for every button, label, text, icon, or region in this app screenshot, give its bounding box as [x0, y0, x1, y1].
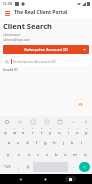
staticText: v	[46, 152, 49, 158]
button[interactable]: 0	[82, 127, 91, 136]
button[interactable]: Search	[16, 118, 23, 125]
staticText: 7	[59, 127, 61, 130]
button[interactable]: Home	[41, 175, 50, 184]
staticText: m	[73, 152, 77, 158]
staticText: f	[36, 140, 38, 146]
button[interactable]: k	[68, 138, 77, 148]
button[interactable]: ?123	[2, 162, 13, 172]
staticText: q	[4, 130, 7, 136]
staticText: s	[17, 140, 20, 146]
button[interactable]: 4	[28, 127, 37, 136]
staticText: 3	[23, 127, 25, 130]
button[interactable]: Recent apps	[65, 174, 76, 184]
staticText: c	[37, 152, 40, 158]
staticText: j	[63, 140, 65, 146]
button[interactable]: x	[24, 150, 34, 160]
button[interactable]: 9	[73, 127, 82, 136]
staticText: 8	[68, 127, 70, 130]
button[interactable]: Back	[16, 175, 25, 184]
staticText: r	[32, 130, 34, 136]
button[interactable]: GIF	[43, 118, 50, 125]
button[interactable]: More options	[69, 118, 76, 125]
staticText: s2manoaur	[3, 33, 21, 37]
button[interactable]: s	[14, 138, 23, 148]
staticText: p	[85, 130, 88, 136]
button[interactable]: Search	[79, 162, 90, 172]
button[interactable]: b	[52, 150, 61, 160]
staticText: 5	[41, 127, 43, 130]
button[interactable]: Enterprise Account ID	[3, 45, 89, 54]
button[interactable]: d	[23, 138, 32, 148]
button[interactable]: Shift	[1, 150, 14, 160]
staticText: a	[8, 140, 11, 146]
staticText: 1	[5, 127, 7, 130]
button[interactable]: 2	[10, 127, 19, 136]
staticText: l	[81, 140, 83, 146]
button[interactable]: 3	[19, 127, 28, 136]
staticText: t	[41, 130, 43, 136]
staticText: .	[73, 164, 75, 170]
button[interactable]: 6	[46, 127, 55, 136]
staticText: y	[49, 130, 52, 136]
button[interactable]: m	[70, 150, 79, 160]
staticText: e	[22, 130, 25, 136]
staticText: ,	[18, 164, 20, 170]
staticText: k	[71, 140, 74, 146]
button[interactable]: z	[14, 150, 24, 160]
button[interactable]: Google assistant	[3, 118, 10, 125]
staticText: i	[68, 130, 70, 136]
staticText: w	[13, 130, 17, 136]
button[interactable]: g	[41, 138, 50, 148]
button[interactable]: h	[50, 138, 59, 148]
staticText: 9	[77, 127, 79, 130]
staticText: The Real Client Portal	[14, 9, 68, 16]
staticText: s2mast@toys.com	[3, 38, 31, 42]
staticText: g	[44, 140, 47, 146]
button[interactable]: ,	[14, 162, 23, 172]
button[interactable]: Voice input	[82, 118, 89, 125]
button[interactable]: Stickers	[29, 118, 36, 125]
staticText: b	[55, 152, 58, 158]
button[interactable]: 1	[1, 127, 10, 136]
button[interactable]: Enterprise Account ID	[3, 57, 89, 66]
button[interactable]: f	[32, 138, 41, 148]
button[interactable]: l	[77, 138, 86, 148]
button[interactable]: v	[43, 150, 52, 160]
button[interactable]: Compose message	[74, 98, 87, 111]
staticText: h	[53, 140, 56, 146]
button[interactable]: 8	[64, 127, 73, 136]
staticText: u	[58, 130, 61, 136]
button[interactable]: Open navigation menu	[3, 9, 11, 17]
staticText: o	[76, 130, 79, 136]
button[interactable]: j	[59, 138, 68, 148]
staticText: x	[28, 152, 31, 158]
button[interactable]: Clipboard	[56, 118, 63, 125]
staticText: z	[18, 152, 20, 158]
staticText: 0	[86, 127, 88, 130]
staticText: Enterprise Account ID	[24, 47, 68, 53]
button[interactable]: Emoji	[23, 162, 32, 172]
staticText: d	[26, 140, 29, 146]
staticText: 6	[50, 127, 52, 130]
staticText: 12:08	[2, 1, 13, 6]
staticText: 2	[14, 127, 16, 130]
staticText: Client Search	[3, 21, 52, 31]
button[interactable]: c	[34, 150, 43, 160]
button[interactable]: Backspace	[79, 150, 91, 160]
button[interactable]: a	[5, 138, 14, 148]
staticText: Enterprise Account ID	[13, 59, 56, 65]
button[interactable]: 5	[37, 127, 46, 136]
staticText: Invalid ID	[3, 68, 18, 72]
staticText: ?123	[4, 165, 11, 169]
button[interactable]: n	[61, 150, 70, 160]
staticText: 4	[32, 127, 34, 130]
staticText: n	[64, 152, 67, 158]
button[interactable]: 7	[55, 127, 64, 136]
